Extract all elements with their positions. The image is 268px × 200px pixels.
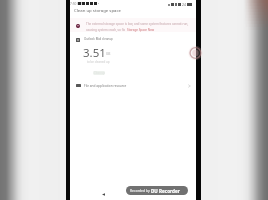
button[interactable]: causing system crash, so fix — [86, 28, 155, 32]
staticText: GB — [106, 52, 111, 56]
staticText: Recorded by — [130, 188, 151, 193]
staticText: DU Recorder — [151, 188, 180, 194]
staticText: causing system crash, so fix — [86, 28, 126, 32]
button[interactable]: File and application resource — [70, 80, 196, 91]
staticText: Clean up — [94, 71, 105, 75]
button[interactable]: Clean up — [93, 71, 105, 75]
staticText: Storage Space Now — [127, 28, 155, 32]
staticText: Clean up storage space — [74, 7, 121, 13]
button[interactable]: Back — [102, 193, 105, 196]
other: Open file and application resource — [188, 84, 191, 88]
staticText: 24 — [182, 2, 186, 7]
staticText: to be cleaned up — [87, 60, 110, 64]
staticText: 7:50 PM — [70, 2, 82, 6]
staticText: File and application resource — [84, 84, 127, 88]
staticText: Outlook Mail cleanup — [84, 37, 113, 41]
staticText: 3.51 — [83, 45, 106, 61]
staticText: The external storage space is low, and s… — [86, 22, 189, 26]
